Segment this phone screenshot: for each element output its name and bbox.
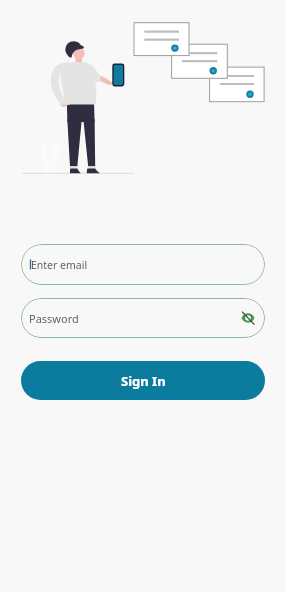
staticText: Enter email xyxy=(31,258,88,272)
button[interactable]: Enter email xyxy=(21,244,265,285)
button[interactable]: Toggle password visibility xyxy=(237,307,259,329)
staticText: Sign In xyxy=(121,372,166,390)
button[interactable]: Sign In xyxy=(21,361,265,400)
staticText: Password xyxy=(29,311,79,326)
button[interactable]: Password xyxy=(21,298,265,338)
